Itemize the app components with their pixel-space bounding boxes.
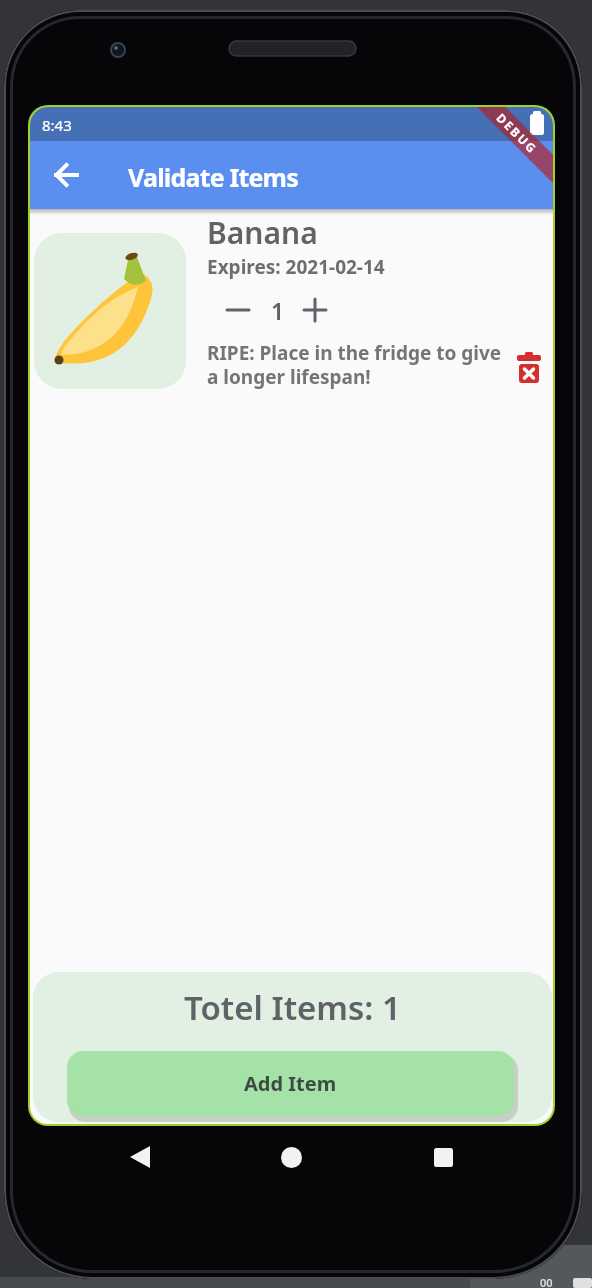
staticText: Totel Items: 1 xyxy=(184,985,401,1030)
button[interactable] xyxy=(48,157,84,193)
button[interactable] xyxy=(511,347,547,387)
staticText: Expires: 2021-02-14 xyxy=(207,254,385,280)
staticText: 00 xyxy=(540,1275,553,1288)
staticText: DEBUG xyxy=(493,109,541,157)
staticText: 8:43 xyxy=(42,115,72,135)
staticText: RIPE: Place in the fridge to give a long… xyxy=(207,340,502,389)
button[interactable] xyxy=(271,1140,311,1174)
button[interactable] xyxy=(423,1140,463,1174)
staticText: Validate Items xyxy=(128,160,298,194)
button[interactable] xyxy=(120,1140,160,1174)
button[interactable] xyxy=(297,292,333,328)
staticText: 1 xyxy=(271,295,285,326)
button[interactable]: Add Item xyxy=(67,1051,514,1116)
staticText: Banana xyxy=(207,212,318,253)
staticText: Add Item xyxy=(244,1070,337,1097)
button[interactable] xyxy=(220,292,256,328)
